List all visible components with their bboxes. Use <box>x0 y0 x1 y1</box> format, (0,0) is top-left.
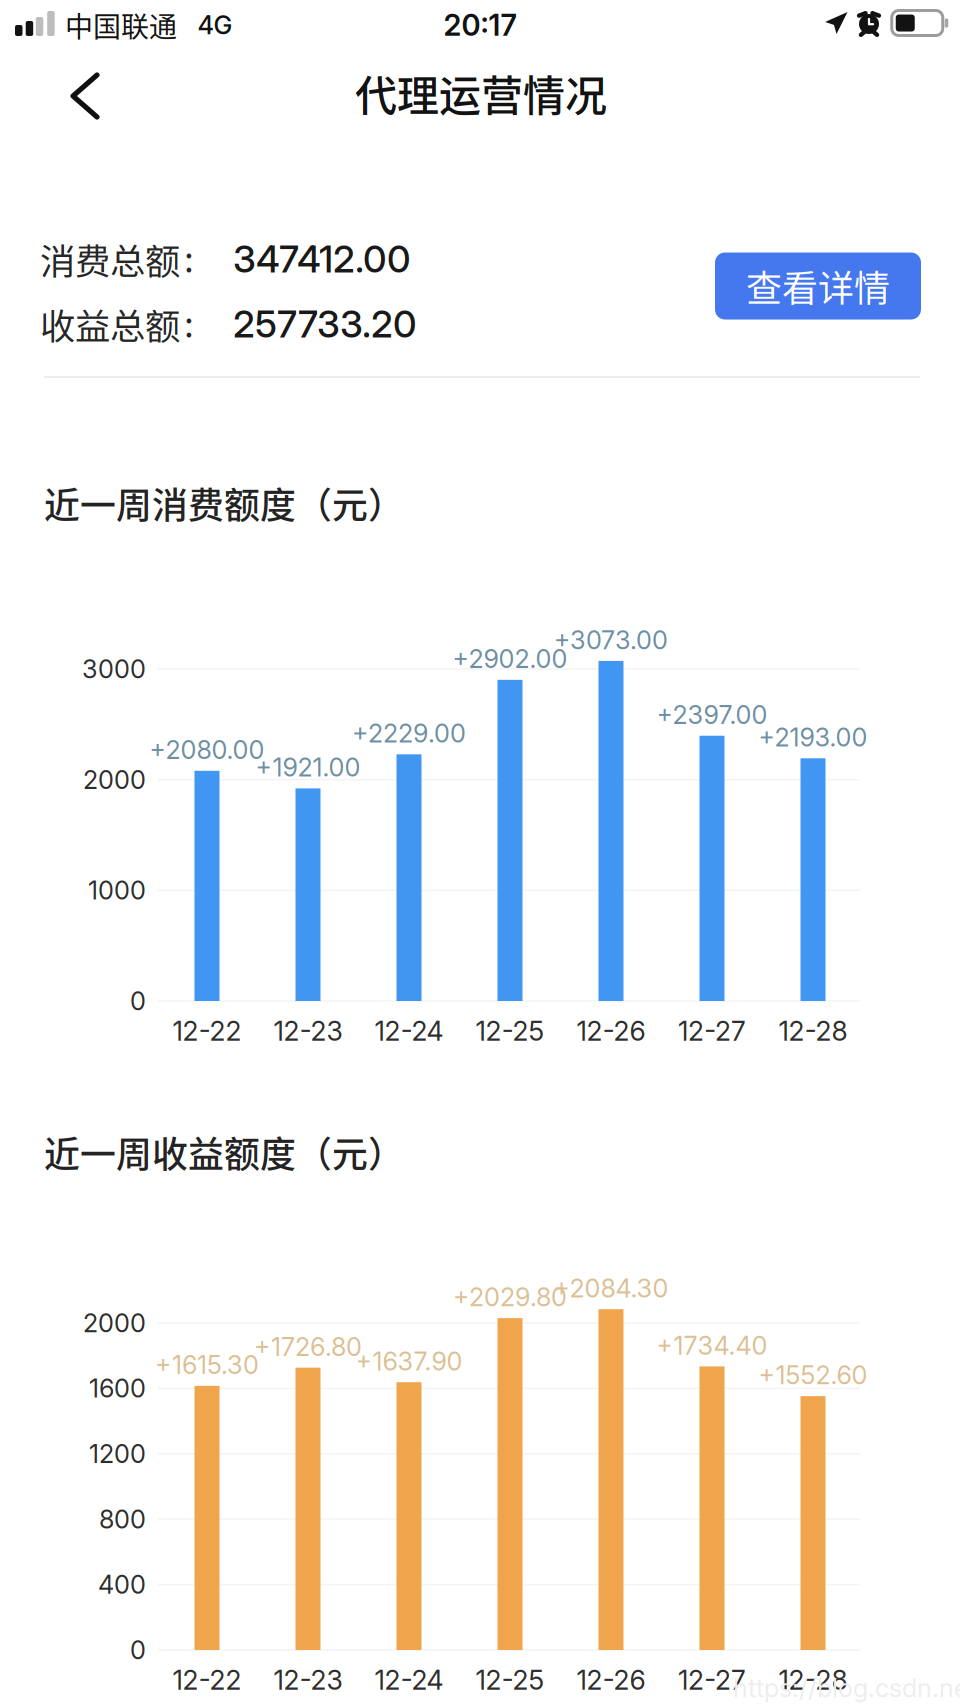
staticText: 257733.20 <box>233 301 417 347</box>
staticText: 0 <box>130 1635 146 1665</box>
staticText: +1615.30 <box>155 1350 259 1380</box>
staticText: 12-22 <box>172 1664 241 1696</box>
staticText: 1200 <box>89 1438 146 1469</box>
staticText: +1726.80 <box>254 1331 362 1362</box>
staticText: 800 <box>99 1504 146 1535</box>
staticText: 12-27 <box>678 1015 746 1047</box>
staticText: 12-28 <box>778 1015 847 1047</box>
staticText: 3000 <box>82 654 146 684</box>
staticText: 12-25 <box>475 1664 544 1696</box>
staticText: +1921.00 <box>255 752 360 783</box>
staticText: +2902.00 <box>452 643 567 674</box>
staticText: 2000 <box>83 764 146 795</box>
staticText: 20:17 <box>443 7 516 43</box>
staticText: +2193.00 <box>758 722 867 753</box>
staticText: 消费总额 <box>40 233 180 285</box>
staticText: 12-23 <box>273 1015 342 1047</box>
staticText: 12-24 <box>374 1015 443 1047</box>
staticText: 中国联通 <box>65 5 177 45</box>
staticText: : <box>184 296 194 348</box>
staticText: 12-26 <box>576 1664 645 1696</box>
button[interactable]: 查看详情 <box>715 252 921 319</box>
staticText: +2029.80 <box>453 1282 567 1312</box>
staticText: 4G <box>197 10 232 40</box>
staticText: 近一周消费额度（元） <box>44 477 404 529</box>
staticText: 1600 <box>89 1373 146 1404</box>
staticText: 12-27 <box>678 1664 746 1696</box>
staticText: 12-22 <box>172 1015 241 1047</box>
staticText: 查看详情 <box>746 260 890 312</box>
staticText: 400 <box>98 1569 146 1600</box>
staticText: +1637.90 <box>355 1346 462 1377</box>
button[interactable]: Back <box>44 50 126 142</box>
staticText: 2000 <box>83 1308 146 1338</box>
staticText: +2080.00 <box>149 734 264 765</box>
staticText: +1734.40 <box>656 1330 767 1361</box>
staticText: : <box>184 231 194 283</box>
staticText: +2229.00 <box>352 718 466 749</box>
staticText: 12-26 <box>576 1015 645 1047</box>
staticText: 347412.00 <box>233 236 411 282</box>
staticText: 收益总额 <box>40 298 180 350</box>
staticText: 近一周收益额度（元） <box>44 1126 404 1178</box>
staticText: 12-23 <box>273 1664 342 1696</box>
staticText: +1552.60 <box>758 1360 867 1390</box>
staticText: 1000 <box>88 875 146 906</box>
staticText: 12-25 <box>475 1015 544 1047</box>
staticText: https://blog.csdn.net/szbeidian <box>733 1673 960 1703</box>
staticText: +2084.30 <box>553 1273 668 1304</box>
staticText: 12-24 <box>374 1664 443 1696</box>
staticText: 代理运营情况 <box>355 63 607 123</box>
staticText: +2397.00 <box>656 699 767 730</box>
staticText: 12-28 <box>778 1664 847 1696</box>
staticText: +3073.00 <box>554 625 668 655</box>
staticText: 0 <box>130 986 146 1016</box>
